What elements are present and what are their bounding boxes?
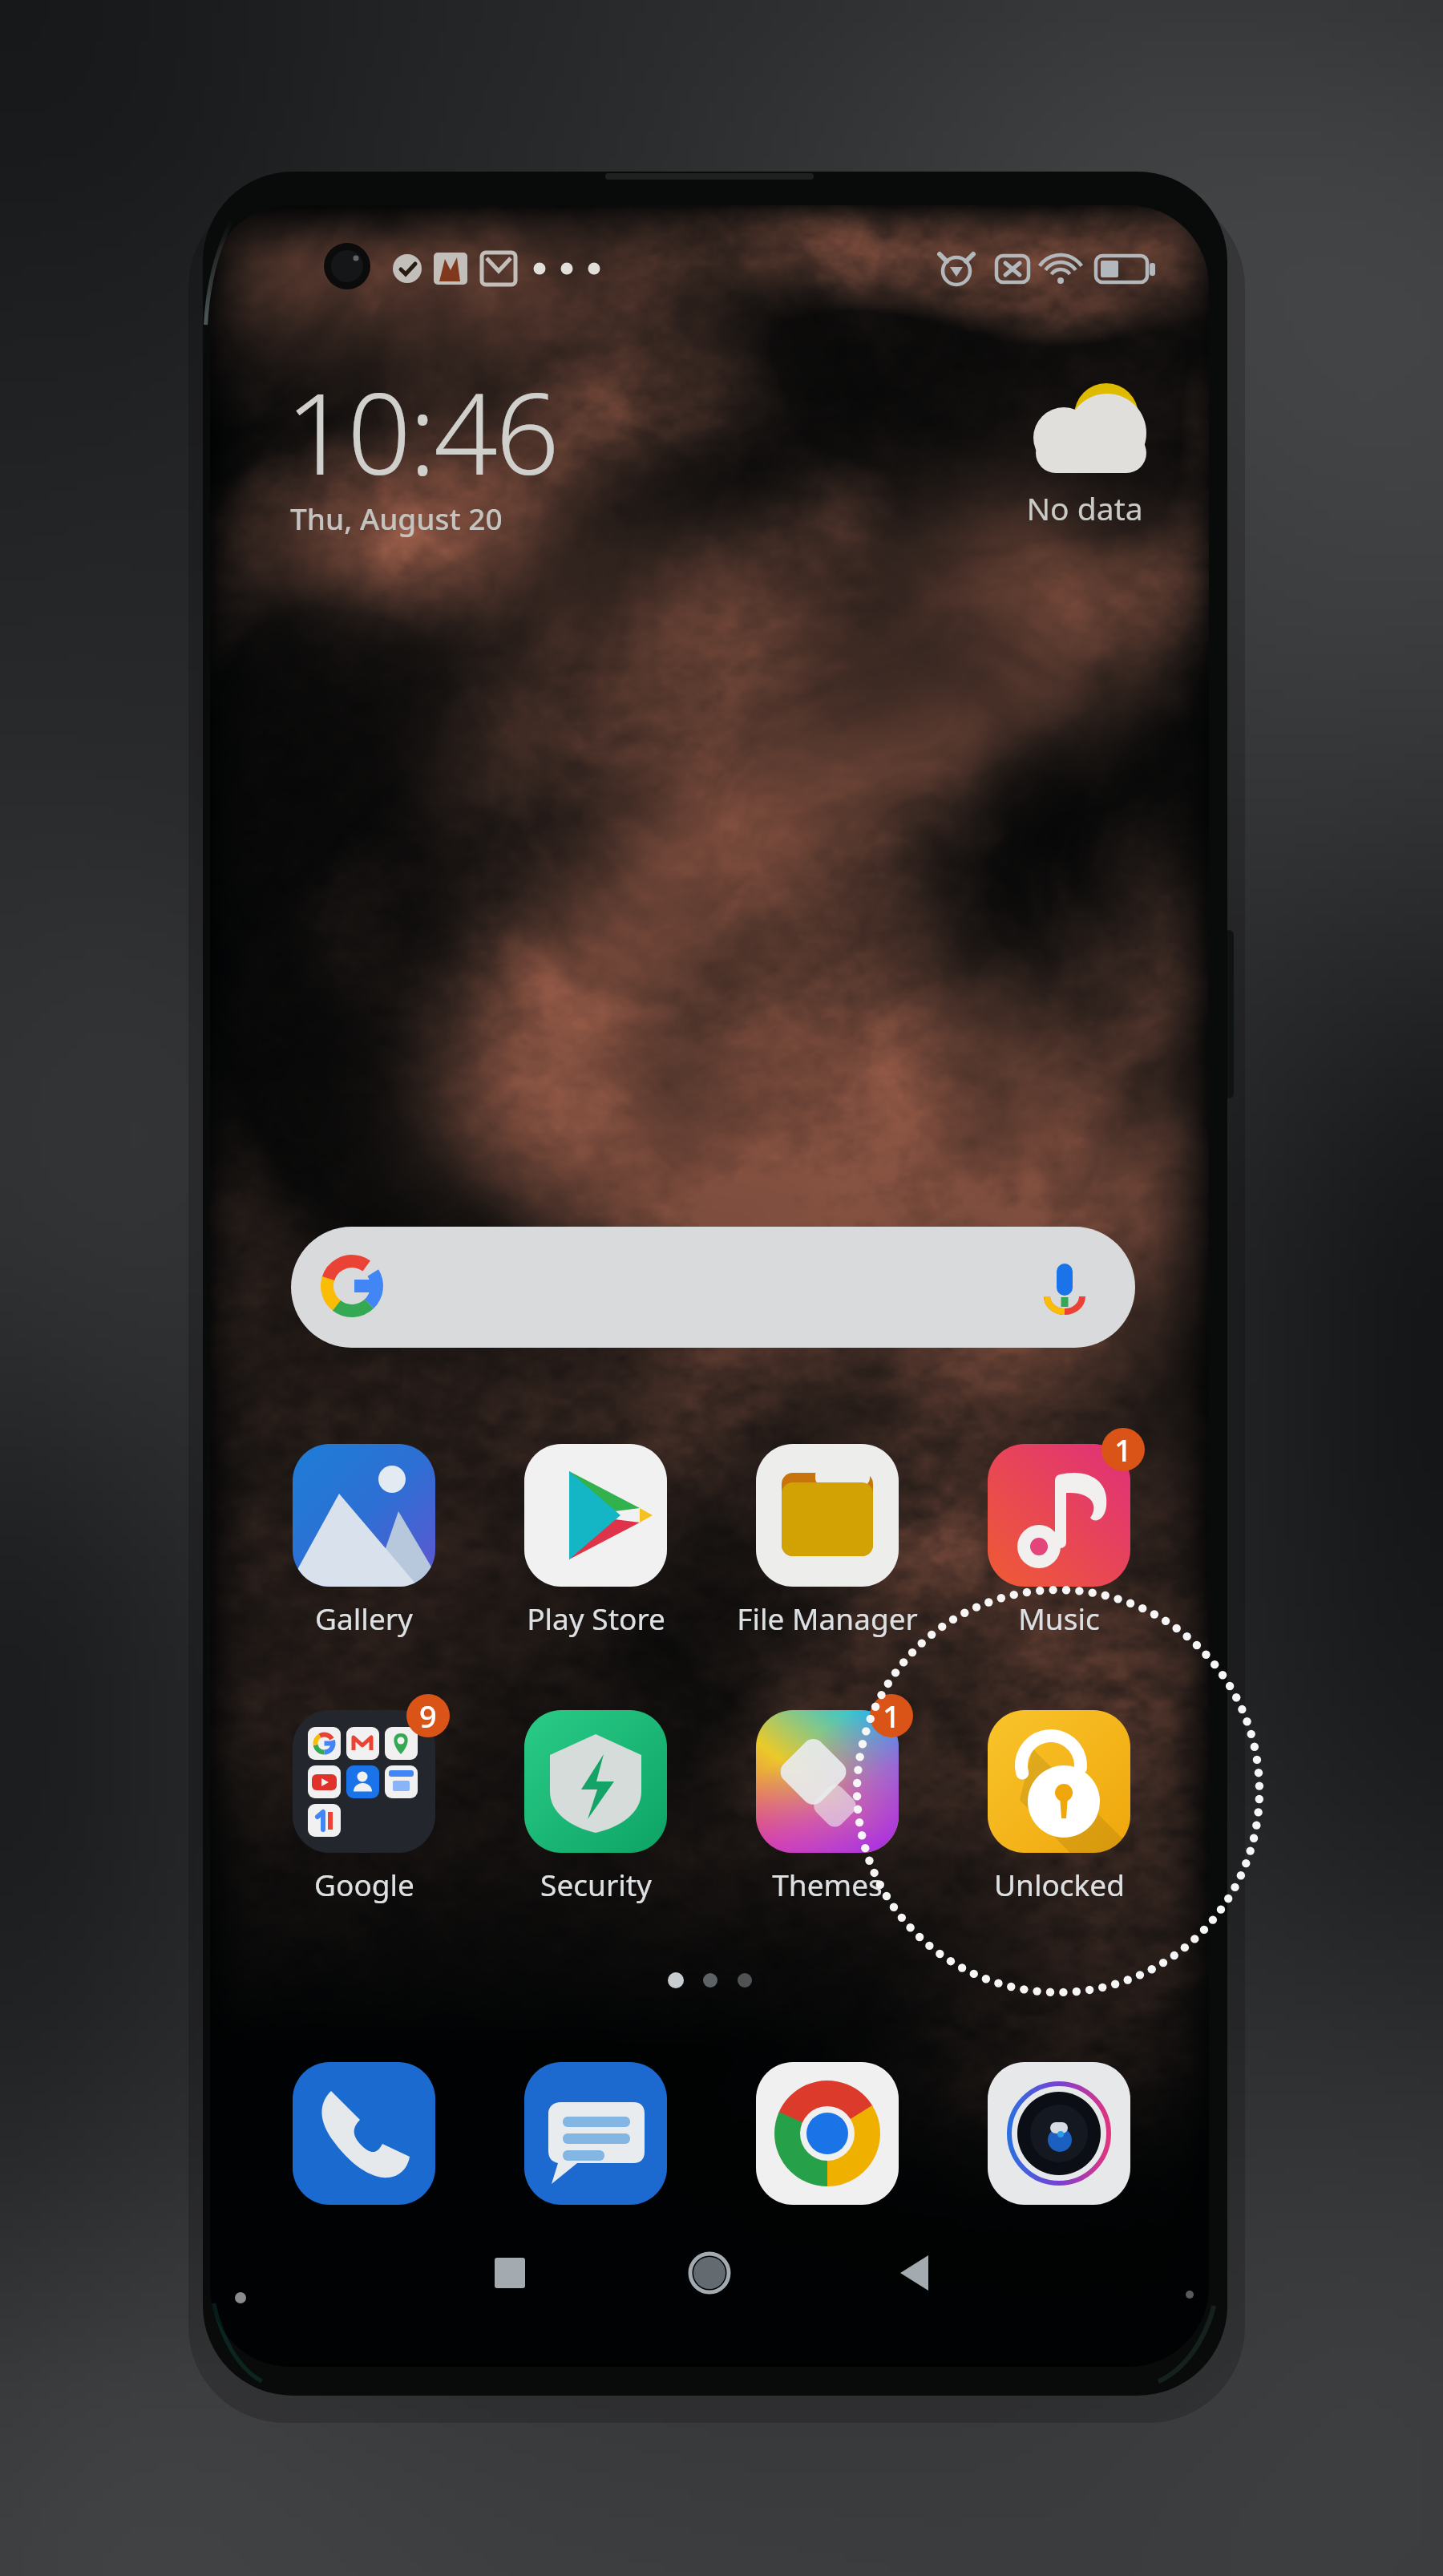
button[interactable]: Weather — [1008, 377, 1161, 529]
staticText: Gallery — [315, 1598, 413, 1638]
button[interactable]: Phone — [293, 2062, 435, 2205]
staticText: Music — [1018, 1598, 1100, 1638]
button[interactable]: Play Store — [480, 1444, 711, 1651]
button[interactable]: Voice search — [1026, 1239, 1114, 1335]
button[interactable]: Camera — [988, 2062, 1130, 2205]
staticText: No data — [1026, 487, 1143, 529]
button[interactable]: Gallery — [249, 1444, 479, 1651]
staticText: Thu, August 20 — [290, 498, 503, 538]
button[interactable]: Music — [944, 1444, 1174, 1651]
button[interactable]: Chrome — [756, 2062, 899, 2205]
staticText: 1 — [883, 1695, 900, 1737]
staticText: Google — [314, 1864, 414, 1904]
staticText: Play Store — [527, 1598, 665, 1638]
button[interactable]: Themes — [712, 1710, 943, 1917]
button[interactable]: Security — [480, 1710, 711, 1917]
button[interactable]: Unlocked — [944, 1710, 1174, 1917]
staticText: 1 — [1114, 1429, 1132, 1470]
staticText: File Manager — [737, 1598, 918, 1638]
button[interactable]: 10:46 — [285, 354, 622, 548]
button[interactable]: Back — [866, 2229, 962, 2319]
staticText: Themes — [772, 1864, 883, 1904]
button[interactable]: File Manager — [712, 1444, 943, 1651]
button[interactable]: Search with Google — [291, 1227, 1135, 1348]
staticText: Security — [540, 1864, 652, 1904]
button[interactable]: Google — [249, 1710, 479, 1917]
staticText: Unlocked — [994, 1864, 1125, 1904]
button[interactable]: Home screen pages — [651, 1956, 771, 2006]
button[interactable]: Messages — [524, 2062, 667, 2205]
button[interactable]: Home — [661, 2229, 758, 2319]
staticText: 9 — [419, 1695, 437, 1737]
staticText: 10:46 — [285, 354, 557, 508]
button[interactable]: Recent apps — [462, 2229, 558, 2319]
